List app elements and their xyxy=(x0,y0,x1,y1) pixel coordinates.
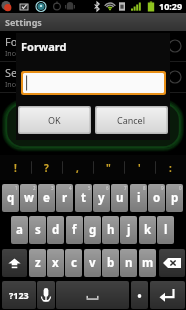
button[interactable]: f xyxy=(66,216,83,244)
staticText: Incoming xyxy=(5,80,37,90)
button[interactable]: l xyxy=(157,216,174,244)
staticText: 3 xyxy=(51,185,54,191)
button[interactable]: h xyxy=(102,216,119,244)
staticText: t xyxy=(81,190,86,206)
staticText: k xyxy=(144,222,152,238)
staticText: ?123 xyxy=(9,289,29,301)
staticText: j xyxy=(127,222,131,238)
staticText: 6 xyxy=(106,185,109,191)
button[interactable]: p xyxy=(166,184,183,212)
button[interactable]: u xyxy=(111,184,128,212)
button[interactable]: : xyxy=(155,155,186,180)
button[interactable]: c xyxy=(65,249,82,277)
staticText: : xyxy=(169,161,172,175)
button[interactable]: m xyxy=(139,249,156,277)
button[interactable]: Enter xyxy=(150,281,185,309)
staticText: 8 xyxy=(143,185,146,191)
staticText: , xyxy=(76,161,79,175)
staticText: 10:29 xyxy=(159,0,183,12)
staticText: 9 xyxy=(161,185,164,191)
staticText: u xyxy=(116,190,124,206)
button[interactable]: i xyxy=(130,184,147,212)
staticText: Forward xyxy=(5,34,48,49)
button[interactable]: Settings xyxy=(0,62,186,92)
staticText: 5 xyxy=(88,185,91,191)
staticText: 7 xyxy=(124,185,127,191)
staticText: n xyxy=(125,255,133,271)
staticText: 0 xyxy=(179,185,182,191)
staticText: f xyxy=(72,222,77,238)
staticText: Incoming calls xyxy=(5,49,53,59)
staticText: ? xyxy=(44,161,49,175)
staticText: v xyxy=(89,255,96,271)
staticText: x xyxy=(52,255,59,271)
button[interactable]: " xyxy=(93,155,124,180)
staticText: c xyxy=(71,255,77,271)
button[interactable]: Shift xyxy=(2,249,27,277)
staticText: OK xyxy=(48,114,61,126)
button[interactable]: n xyxy=(120,249,137,277)
button[interactable]: Forward xyxy=(0,31,186,61)
button[interactable]: Symbols xyxy=(2,281,36,309)
staticText: Settings xyxy=(5,16,42,28)
button[interactable]: z xyxy=(29,249,46,277)
button[interactable]: b xyxy=(102,249,119,277)
staticText: Forward xyxy=(21,39,67,54)
button[interactable]: y xyxy=(93,184,110,212)
button[interactable]: ! xyxy=(0,155,31,180)
button[interactable]: t xyxy=(75,184,92,212)
staticText: b xyxy=(107,255,115,271)
button[interactable]: Cancel xyxy=(95,106,168,134)
button[interactable]: OK xyxy=(18,106,91,134)
button[interactable]: Backspace xyxy=(159,249,185,277)
button[interactable]: x xyxy=(47,249,64,277)
staticText: 1 xyxy=(15,185,18,191)
button[interactable]: d xyxy=(47,216,64,244)
button[interactable]: w xyxy=(20,184,37,212)
staticText: q xyxy=(7,190,15,206)
button[interactable]: g xyxy=(84,216,101,244)
staticText: o xyxy=(153,190,161,206)
staticText: Cancel xyxy=(117,114,146,126)
button[interactable]: ? xyxy=(31,155,62,180)
button[interactable]: j xyxy=(120,216,137,244)
button[interactable]: a xyxy=(11,216,28,244)
staticText: w xyxy=(24,190,34,206)
button[interactable]: r xyxy=(56,184,73,212)
button[interactable]: v xyxy=(84,249,101,277)
button[interactable]: q xyxy=(2,184,19,212)
staticText: s xyxy=(35,222,41,238)
button[interactable]: e xyxy=(38,184,55,212)
button[interactable]: o xyxy=(148,184,165,212)
staticText: z xyxy=(35,255,41,271)
staticText: e xyxy=(43,190,50,206)
staticText: h xyxy=(107,222,115,238)
staticText: 4 xyxy=(69,185,72,191)
button[interactable]: Voice input xyxy=(37,281,55,309)
button[interactable]: k xyxy=(139,216,156,244)
staticText: r xyxy=(62,190,68,206)
staticText: ! xyxy=(14,161,17,175)
staticText: a xyxy=(16,222,23,238)
staticText: Settings xyxy=(5,65,47,80)
staticText: p xyxy=(171,190,179,206)
button[interactable]: ' xyxy=(124,155,155,180)
staticText: y xyxy=(98,190,105,206)
staticText: " xyxy=(106,161,111,175)
button[interactable]: Space xyxy=(56,281,129,309)
button[interactable]: Period xyxy=(131,281,148,309)
button[interactable]: s xyxy=(29,216,46,244)
button[interactable] xyxy=(21,71,166,95)
staticText: i xyxy=(137,190,141,206)
staticText: l xyxy=(164,222,168,238)
staticText: d xyxy=(52,222,60,238)
staticText: ' xyxy=(138,161,141,175)
button[interactable]: , xyxy=(62,155,93,180)
staticText: m xyxy=(142,255,154,271)
staticText: g xyxy=(89,222,97,238)
staticText: 2 xyxy=(33,185,36,191)
